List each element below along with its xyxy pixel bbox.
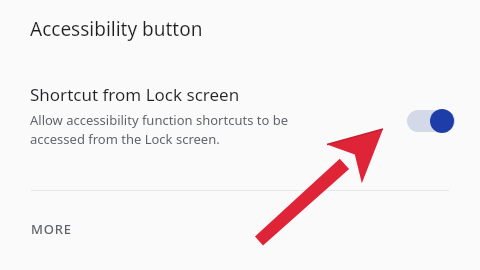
button[interactable]: Shortcut from Lock screen toggle, on xyxy=(398,104,464,138)
staticText: Allow accessibility function shortcuts t… xyxy=(30,111,289,148)
button[interactable]: MORE xyxy=(31,220,72,238)
staticText: Shortcut from Lock screen xyxy=(30,83,240,106)
button[interactable]: Shortcut from Lock screen xyxy=(0,76,480,162)
staticText: Accessibility button xyxy=(30,16,203,42)
